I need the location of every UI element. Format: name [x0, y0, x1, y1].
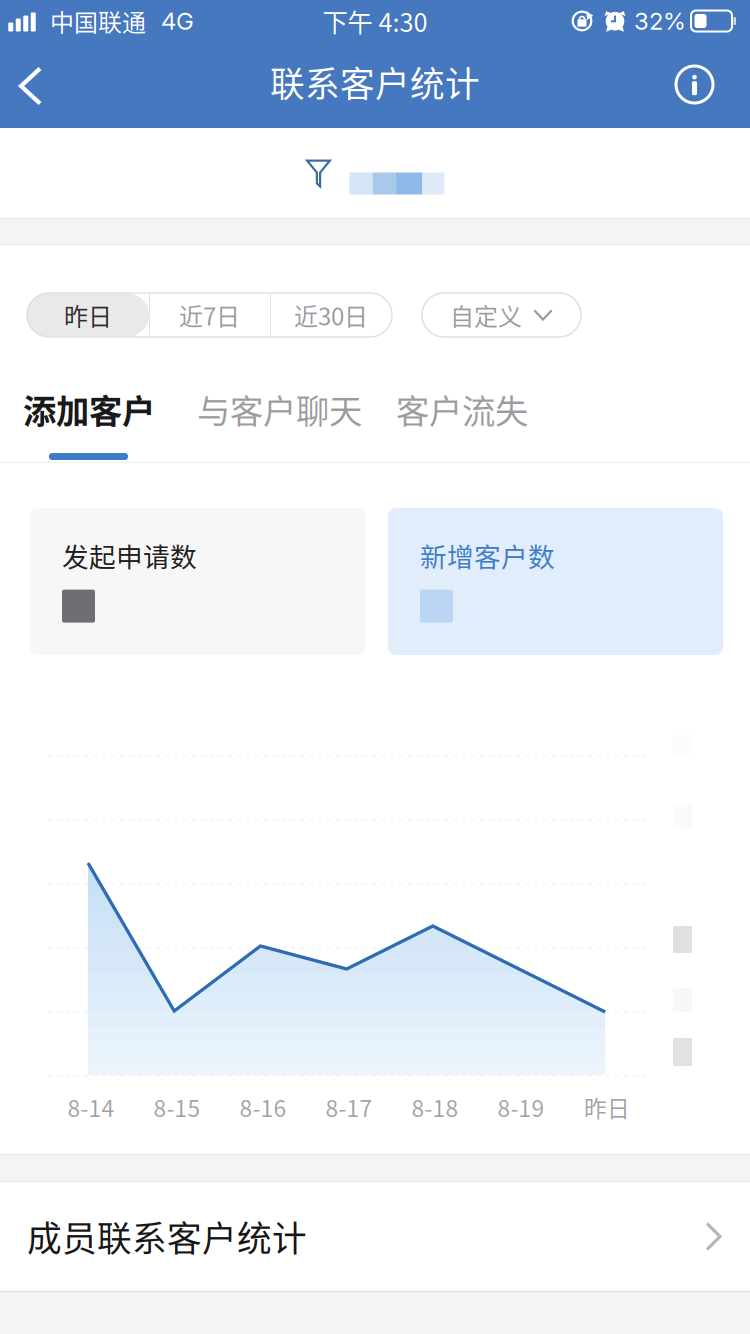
staticText: 联系客户统计 [270, 57, 480, 107]
button[interactable]: 新增客户数 [388, 508, 723, 655]
staticText: 下午 4:30 [322, 3, 427, 39]
button[interactable]: 自定义 [422, 293, 581, 337]
staticText: 8-16 [239, 1091, 286, 1123]
staticText: 昨日 [64, 298, 112, 332]
staticText: 4G [161, 6, 194, 35]
button[interactable]: 客户流失 [396, 386, 529, 432]
button[interactable]: 说明 [662, 52, 727, 117]
staticText: 8-19 [497, 1091, 544, 1123]
staticText: 8-18 [411, 1091, 458, 1123]
button[interactable]: 添加客户 [23, 386, 156, 432]
staticText: 中国联通 [50, 4, 146, 38]
staticText: 8-14 [67, 1091, 114, 1123]
staticText: 添加客户 [23, 385, 155, 433]
button[interactable]: 筛选部门 [0, 128, 750, 219]
staticText: 新增客户数 [420, 536, 555, 575]
button[interactable]: 返回 [4, 48, 57, 124]
staticText: 8-15 [153, 1091, 200, 1123]
staticText: 近30日 [294, 298, 368, 332]
button[interactable]: 近7日 [149, 293, 270, 337]
button[interactable]: 成员联系客户统计 [0, 1182, 750, 1291]
staticText: 客户流失 [396, 385, 528, 433]
button[interactable]: 发起申请数 [30, 508, 365, 655]
button[interactable]: 与客户聊天 [197, 386, 364, 432]
staticText: 成员联系客户统计 [27, 1211, 307, 1262]
staticText: 昨日 [584, 1091, 630, 1123]
button[interactable]: 近30日 [270, 293, 392, 337]
button[interactable]: 昨日 [27, 293, 149, 337]
staticText: 8-17 [325, 1091, 372, 1123]
staticText: 近7日 [179, 298, 240, 332]
staticText: 发起申请数 [62, 536, 197, 575]
staticText: 与客户聊天 [197, 385, 362, 433]
staticText: 自定义 [450, 298, 522, 332]
staticText: 32% [634, 6, 686, 35]
